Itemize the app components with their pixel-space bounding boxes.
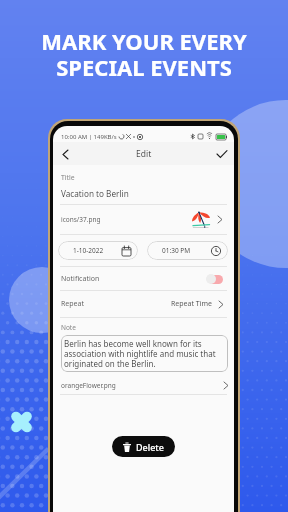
staticText: Repeat xyxy=(61,299,85,309)
button[interactable]: Notification xyxy=(53,267,234,290)
staticText: MARK YOUR EVERY SPECIAL EVENTS xyxy=(41,26,247,83)
button[interactable]: Back xyxy=(57,146,73,162)
staticText: orangeFlower.png xyxy=(61,381,116,390)
button[interactable]: Save xyxy=(214,146,230,162)
button[interactable]: Repeat xyxy=(53,291,234,317)
staticText: Title xyxy=(61,173,75,182)
button[interactable]: orangeFlower.png xyxy=(61,376,228,394)
staticText: Berlin has become well known for its ass… xyxy=(64,338,226,369)
staticText: icons/37.png xyxy=(61,215,101,224)
staticText: Notification xyxy=(61,274,100,284)
staticText: Vacation to Berlin xyxy=(61,188,129,199)
staticText: Repeat Time xyxy=(171,299,213,309)
button[interactable]: Delete xyxy=(112,436,175,457)
staticText: 01:30 PM xyxy=(162,246,191,255)
button[interactable]: 01:30 PM xyxy=(147,241,228,260)
button[interactable]: Berlin has become well known for its ass… xyxy=(61,335,228,372)
button[interactable]: Title xyxy=(53,165,234,204)
staticText: Delete xyxy=(136,441,164,453)
button[interactable]: Notification toggle xyxy=(206,274,223,284)
staticText: Note xyxy=(61,323,76,332)
staticText: 10:00 AM | 149KB/s xyxy=(61,133,117,141)
staticText: 1-10-2022 xyxy=(73,246,104,255)
button[interactable]: icons/37.png xyxy=(53,205,234,234)
button[interactable]: 1-10-2022 xyxy=(58,241,138,260)
staticText: Edit xyxy=(136,148,152,160)
